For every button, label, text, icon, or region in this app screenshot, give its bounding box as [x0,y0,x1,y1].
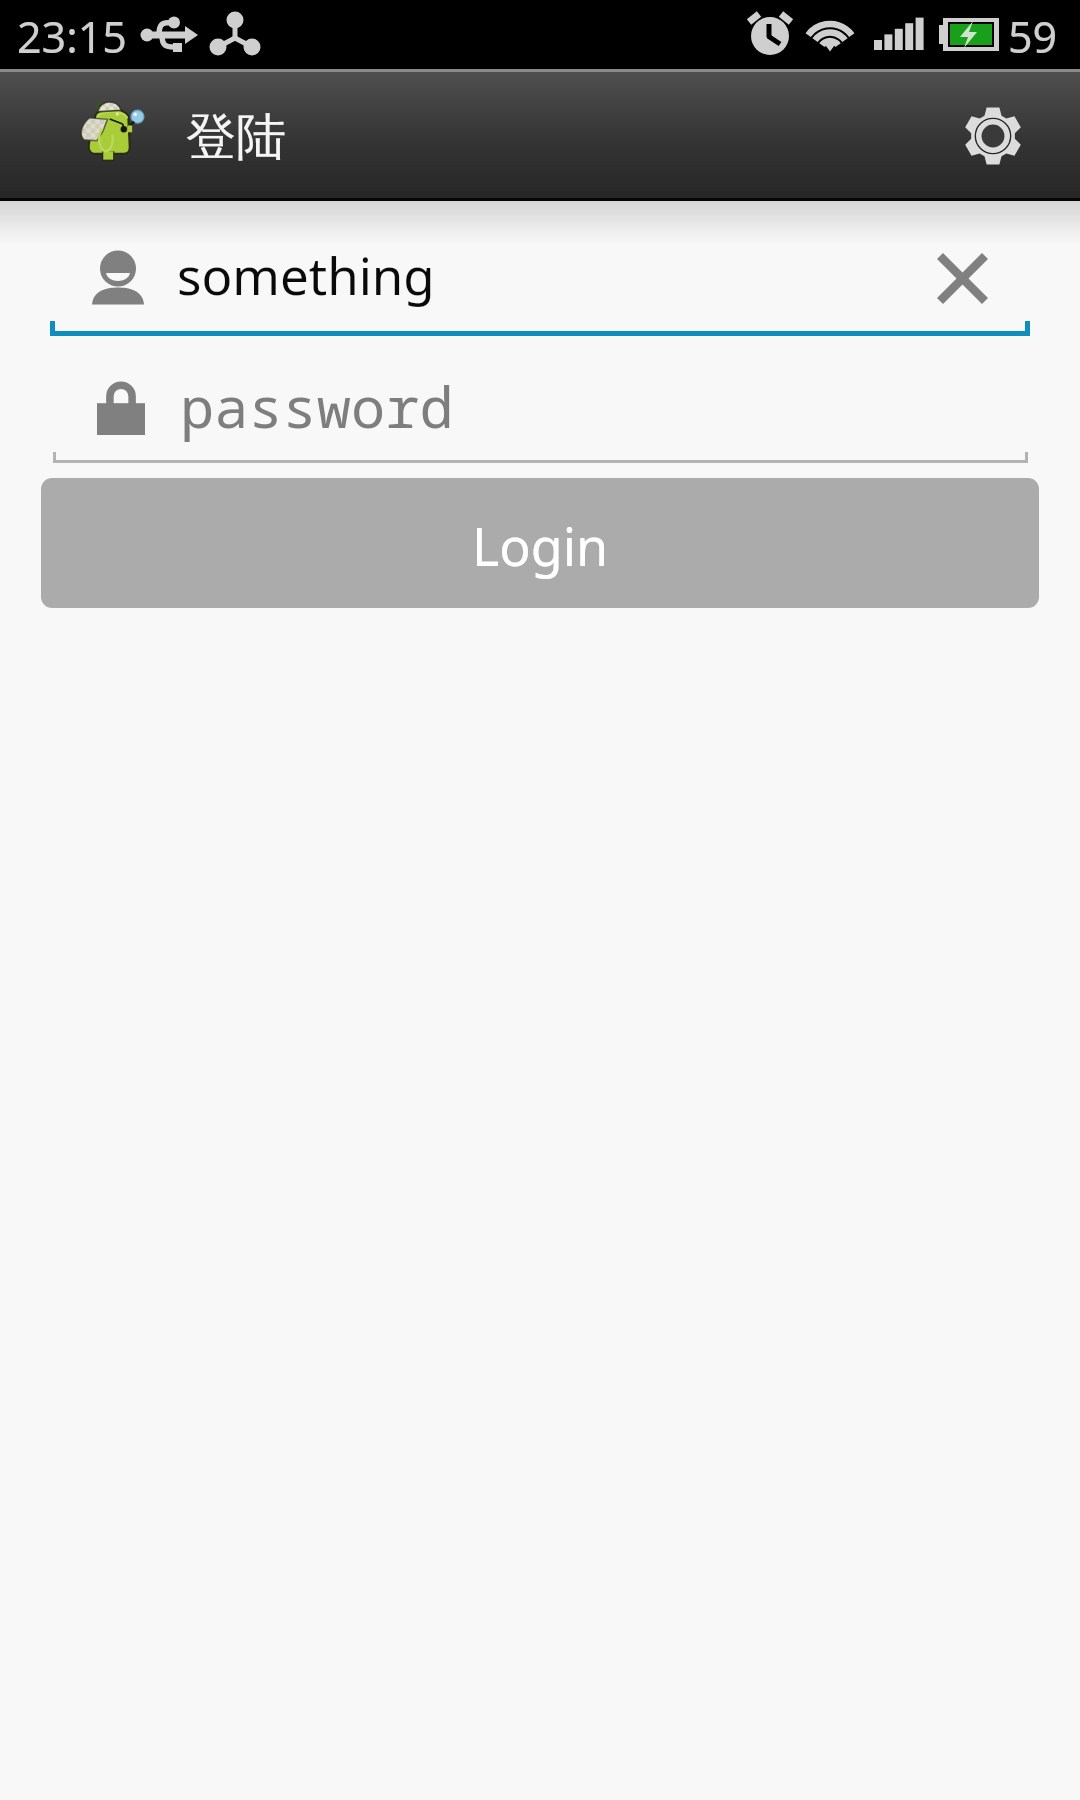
button[interactable]: Login [41,478,1039,608]
button[interactable]: Clear text [907,223,1017,333]
staticText: 59 [1008,7,1058,66]
button[interactable]: password [53,350,1028,465]
staticText: 登陆 [186,106,286,169]
staticText: Login [472,510,609,581]
staticText: password [180,367,454,445]
staticText: 23:15 [17,7,127,66]
button[interactable]: something [50,222,1030,340]
button[interactable]: Settings [938,81,1048,191]
staticText: something [177,240,435,309]
